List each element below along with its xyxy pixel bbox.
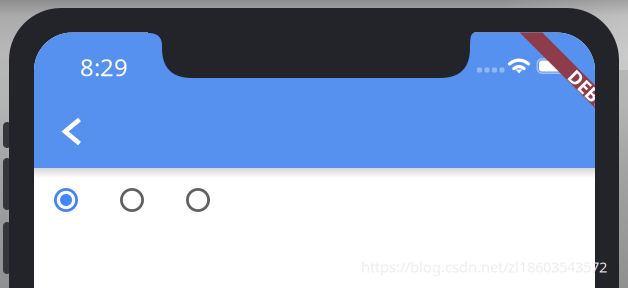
button[interactable]: Option — [186, 188, 210, 212]
button[interactable]: Option — [120, 188, 144, 212]
staticText: DEBUG — [577, 48, 628, 73]
staticText: https://blog.csdn.net/zl18603543572 — [361, 257, 607, 276]
button[interactable]: Selected option — [54, 188, 78, 212]
staticText: 8:29 — [80, 51, 128, 83]
button[interactable]: Back — [48, 107, 96, 155]
